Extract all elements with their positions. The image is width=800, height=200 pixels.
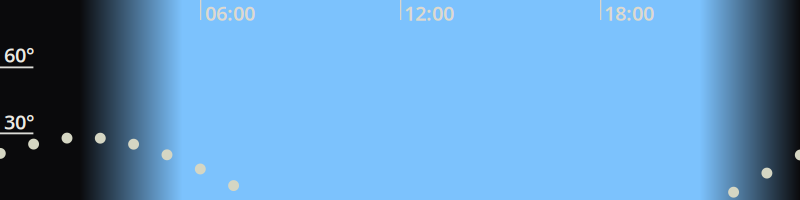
staticText: 18:00 bbox=[604, 0, 654, 26]
staticText: 06:00 bbox=[205, 0, 255, 26]
staticText: 30° bbox=[4, 108, 35, 135]
staticText: 12:00 bbox=[404, 0, 454, 26]
staticText: 60° bbox=[4, 41, 35, 68]
